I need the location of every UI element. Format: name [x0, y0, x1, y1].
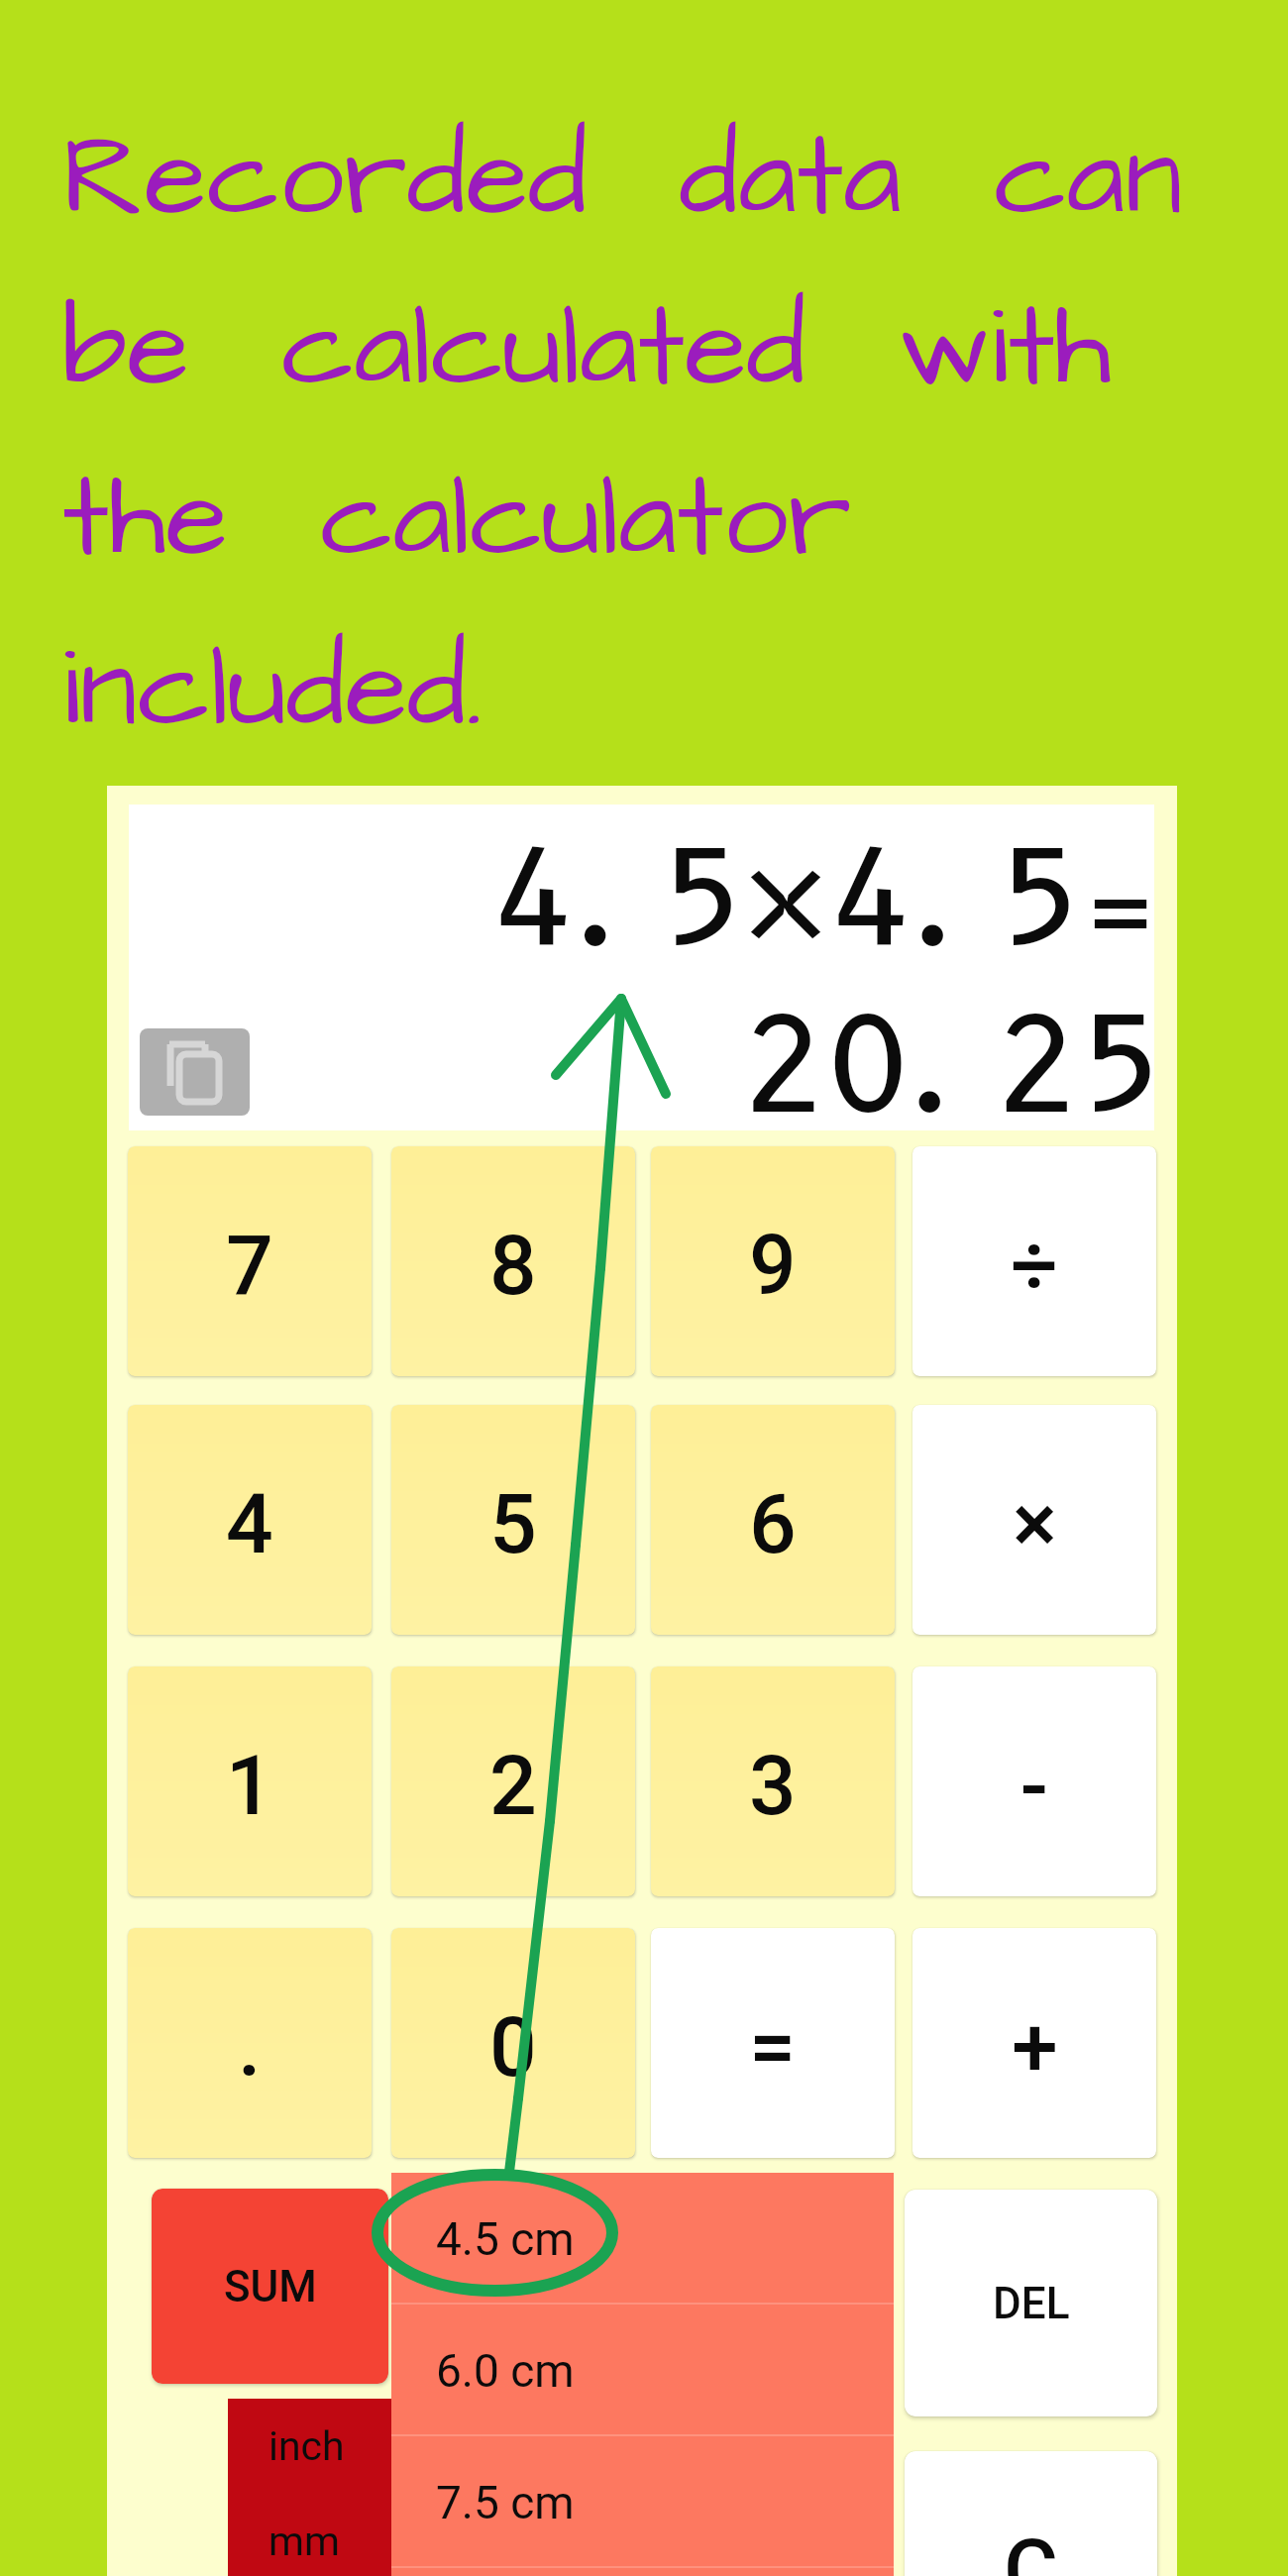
staticText: .	[238, 1998, 262, 2095]
staticText: mm	[268, 2518, 340, 2565]
button[interactable]: 9	[651, 1146, 895, 1376]
button[interactable]: mm	[228, 2494, 392, 2576]
button[interactable]: 7	[128, 1146, 372, 1376]
button[interactable]: 7.5 cm	[391, 2436, 894, 2568]
staticText: 6.0 cm	[436, 2344, 575, 2398]
staticText: the calculator	[62, 440, 852, 599]
button[interactable]: DEL	[905, 2190, 1157, 2416]
staticText: -	[1020, 1737, 1048, 1834]
button[interactable]: -	[912, 1666, 1156, 1896]
button[interactable]: ÷	[912, 1146, 1156, 1376]
staticText: =	[749, 1998, 797, 2095]
button[interactable]: .	[128, 1928, 372, 2158]
button[interactable]: Copy	[140, 1028, 250, 1116]
staticText: Recorded data can	[62, 99, 1183, 259]
staticText: 9	[749, 1217, 797, 1314]
staticText: be calculated with	[62, 269, 1112, 429]
staticText: 4.5×4.5=	[146, 820, 1166, 978]
button[interactable]: 6.0 cm	[391, 2305, 894, 2436]
button[interactable]: 2	[391, 1666, 635, 1896]
staticText: included.	[62, 610, 483, 770]
staticText: ÷	[1011, 1217, 1058, 1314]
staticText: 7.5 cm	[436, 2476, 575, 2529]
button[interactable]: 4	[128, 1405, 372, 1635]
button[interactable]: SUM	[152, 2189, 388, 2384]
button[interactable]: 4.5 cm	[391, 2173, 894, 2305]
staticText: C	[1004, 2521, 1058, 2576]
button[interactable]: inch	[228, 2399, 392, 2494]
staticText: 0	[489, 1998, 537, 2095]
staticText: 2	[489, 1737, 537, 1834]
button[interactable]: 6	[651, 1405, 895, 1635]
staticText: ×	[1013, 1475, 1057, 1572]
staticText: SUM	[224, 2261, 317, 2312]
staticText: 7	[226, 1217, 273, 1314]
staticText: 8	[489, 1217, 537, 1314]
staticText: 4.5 cm	[436, 2212, 575, 2266]
staticText: 1	[226, 1737, 273, 1834]
button[interactable]: 1	[128, 1666, 372, 1896]
button[interactable]: +	[912, 1928, 1156, 2158]
button[interactable]: 5	[391, 1405, 635, 1635]
button[interactable]: 3	[651, 1666, 895, 1896]
button[interactable]: 8	[391, 1146, 635, 1376]
button[interactable]: =	[651, 1928, 895, 2158]
button[interactable]: ×	[912, 1405, 1156, 1635]
staticText: 5	[489, 1475, 537, 1572]
staticText: inch	[268, 2422, 345, 2470]
staticText: 20.25	[143, 987, 1163, 1144]
button[interactable]: C	[905, 2451, 1157, 2576]
staticText: DEL	[993, 2278, 1070, 2329]
staticText: 6	[749, 1475, 797, 1572]
staticText: 4	[226, 1475, 273, 1572]
button[interactable]: 0	[391, 1928, 635, 2158]
staticText: +	[1012, 1998, 1058, 2095]
staticText: 3	[749, 1737, 797, 1834]
